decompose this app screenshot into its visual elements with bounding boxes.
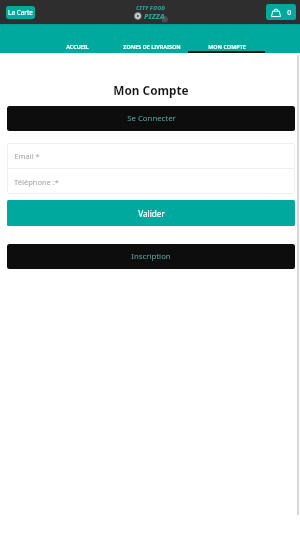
staticText: Téléphone :* bbox=[14, 177, 59, 187]
staticText: 0 bbox=[287, 8, 291, 17]
staticText: Email * bbox=[14, 151, 40, 161]
staticText: Mon Compte bbox=[113, 82, 189, 98]
staticText: Se Connecter bbox=[127, 113, 176, 124]
button[interactable]: ACCUEIL bbox=[39, 39, 116, 53]
staticText: MON COMPTE bbox=[208, 43, 246, 50]
button[interactable]: Panier bbox=[266, 4, 296, 20]
staticText: ZONES DE LIVRAISON bbox=[123, 43, 181, 50]
staticText: CITY FOOD bbox=[136, 4, 166, 12]
button[interactable]: Valider bbox=[7, 200, 295, 226]
staticText: Inscription bbox=[131, 251, 171, 262]
button[interactable]: Email * bbox=[7, 143, 295, 168]
button[interactable]: Inscription bbox=[7, 244, 295, 269]
button[interactable]: La Carte bbox=[6, 6, 35, 19]
button[interactable]: MON COMPTE bbox=[188, 39, 265, 53]
button[interactable]: Se Connecter bbox=[7, 106, 295, 131]
staticText: Valider bbox=[138, 208, 165, 219]
button[interactable]: Téléphone :* bbox=[7, 169, 295, 194]
staticText: ACCUEIL bbox=[66, 43, 89, 50]
staticText: La Carte bbox=[8, 8, 33, 17]
button[interactable]: ZONES DE LIVRAISON bbox=[116, 39, 188, 53]
staticText: PIZZA bbox=[144, 11, 165, 21]
